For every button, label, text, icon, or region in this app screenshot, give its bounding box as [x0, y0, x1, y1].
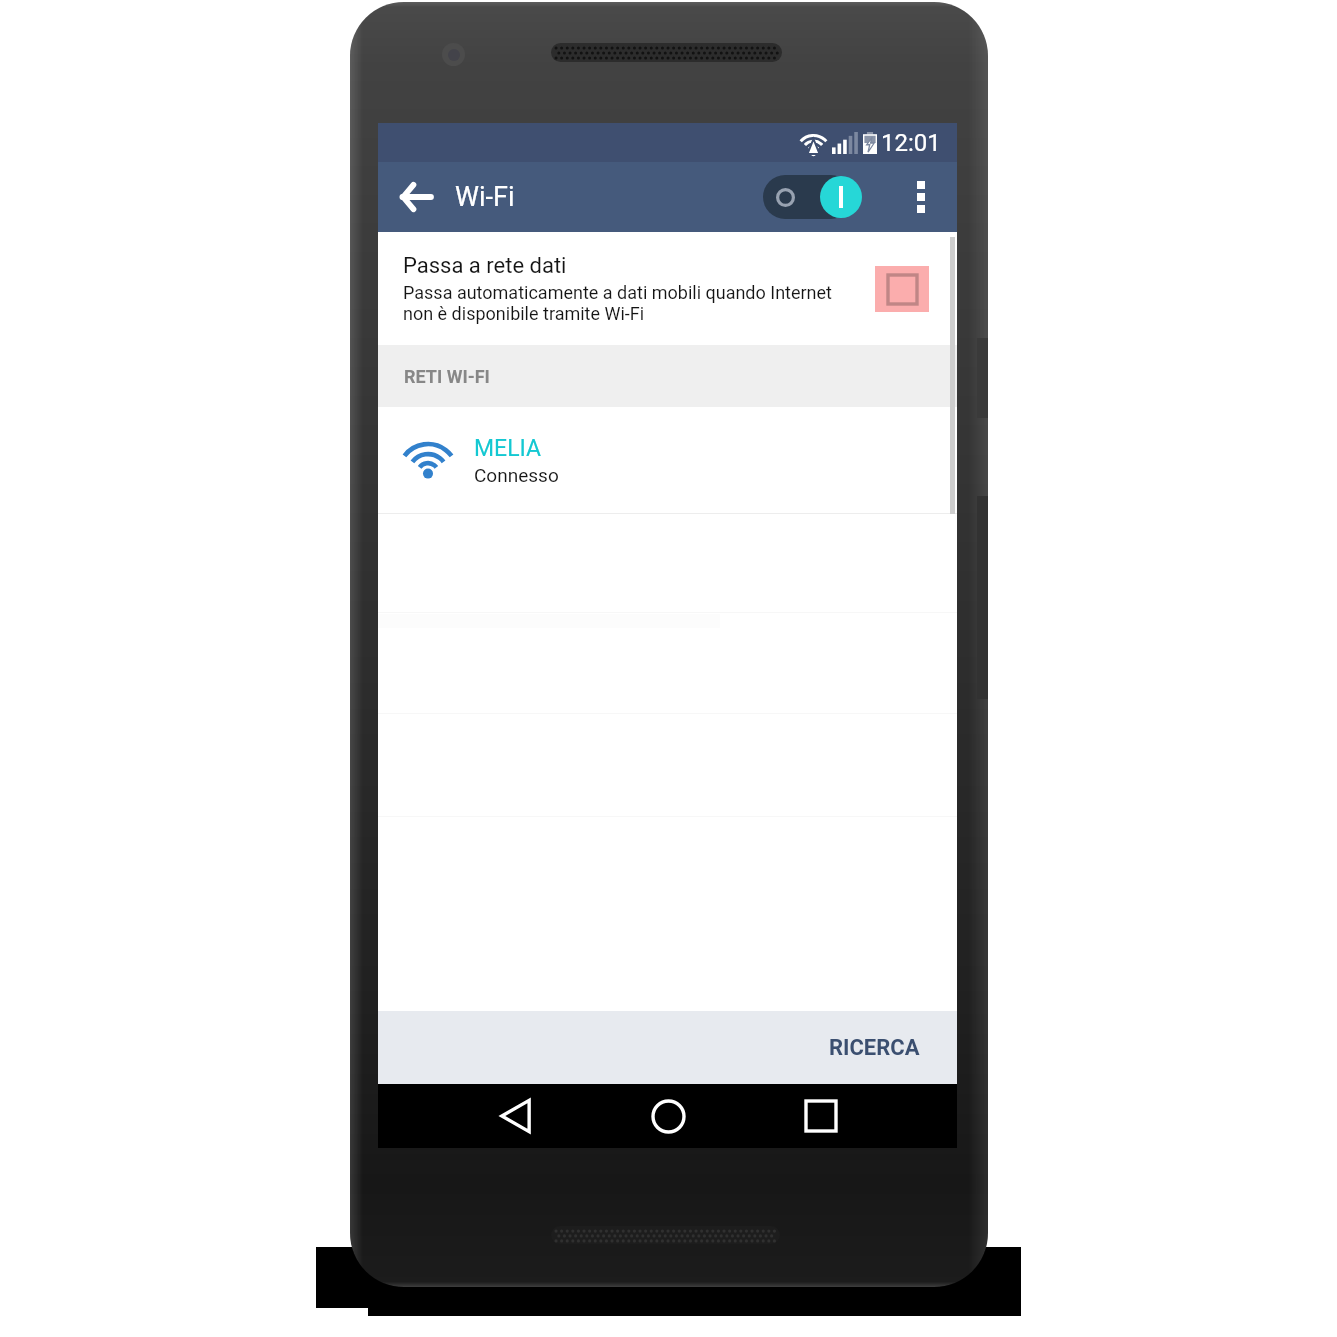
staticText: Connesso — [474, 464, 559, 486]
button[interactable]: Back — [476, 1084, 554, 1148]
button[interactable]: More options — [900, 162, 942, 232]
button[interactable]: Passa a rete dati checkbox — [875, 266, 929, 312]
staticText: Passa a rete dati — [403, 253, 567, 279]
button[interactable]: Recents — [782, 1084, 860, 1148]
button[interactable]: Home — [629, 1084, 707, 1148]
button[interactable]: Passa a rete dati — [378, 232, 957, 345]
staticText: RICERCA — [829, 1035, 920, 1061]
button[interactable]: Back — [388, 162, 444, 232]
staticText: 12:01 — [881, 129, 941, 157]
button[interactable]: MELIA — [378, 407, 957, 513]
staticText: RETI WI-FI — [404, 366, 490, 387]
staticText: Wi-Fi — [455, 181, 515, 213]
button[interactable]: Wi-Fi on — [763, 172, 862, 222]
button[interactable]: RICERCA — [792, 1011, 957, 1084]
staticText: MELIA — [474, 435, 542, 462]
staticText: Passa automaticamente a dati mobili quan… — [403, 282, 865, 324]
